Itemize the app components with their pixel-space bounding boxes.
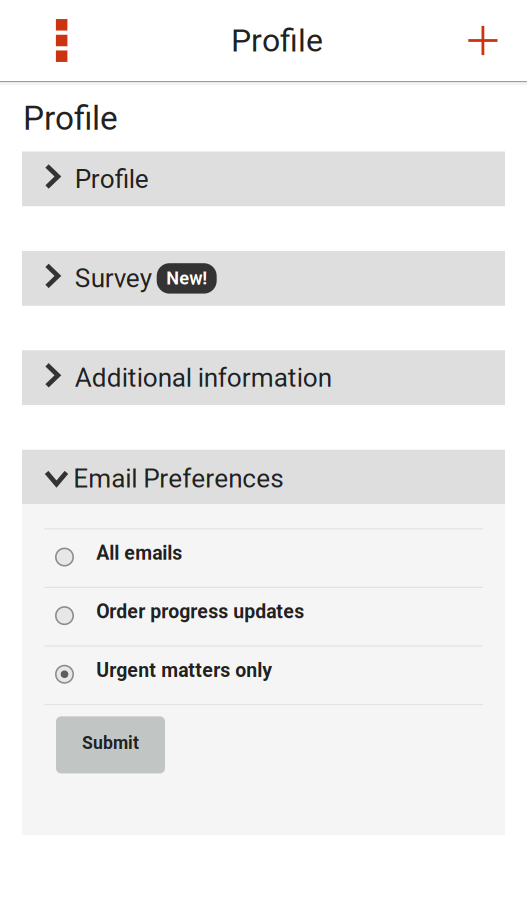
button[interactable]: Submit [56, 716, 165, 773]
staticText: Order progress updates [96, 600, 304, 623]
staticText: New! [166, 268, 207, 289]
staticText: Additional information [75, 362, 332, 393]
staticText: All emails [96, 542, 182, 564]
button[interactable]: Additional information [22, 350, 505, 405]
button[interactable]: Survey [22, 251, 505, 306]
staticText: Survey [75, 263, 152, 294]
button[interactable]: All emails [22, 529, 505, 587]
staticText: Submit [82, 733, 139, 753]
button[interactable]: Add [454, 10, 527, 71]
staticText: Profile [23, 99, 118, 138]
staticText: Urgent matters only [96, 659, 272, 682]
staticText: Profile [75, 164, 149, 194]
button[interactable]: Profile [22, 151, 505, 206]
staticText: Email Preferences [73, 463, 283, 494]
button[interactable]: Email Preferences [22, 450, 505, 504]
button[interactable]: Menu [0, 9, 80, 71]
staticText: Profile [231, 22, 323, 59]
button[interactable]: Order progress updates [22, 588, 505, 645]
button[interactable]: Urgent matters only [22, 647, 505, 704]
